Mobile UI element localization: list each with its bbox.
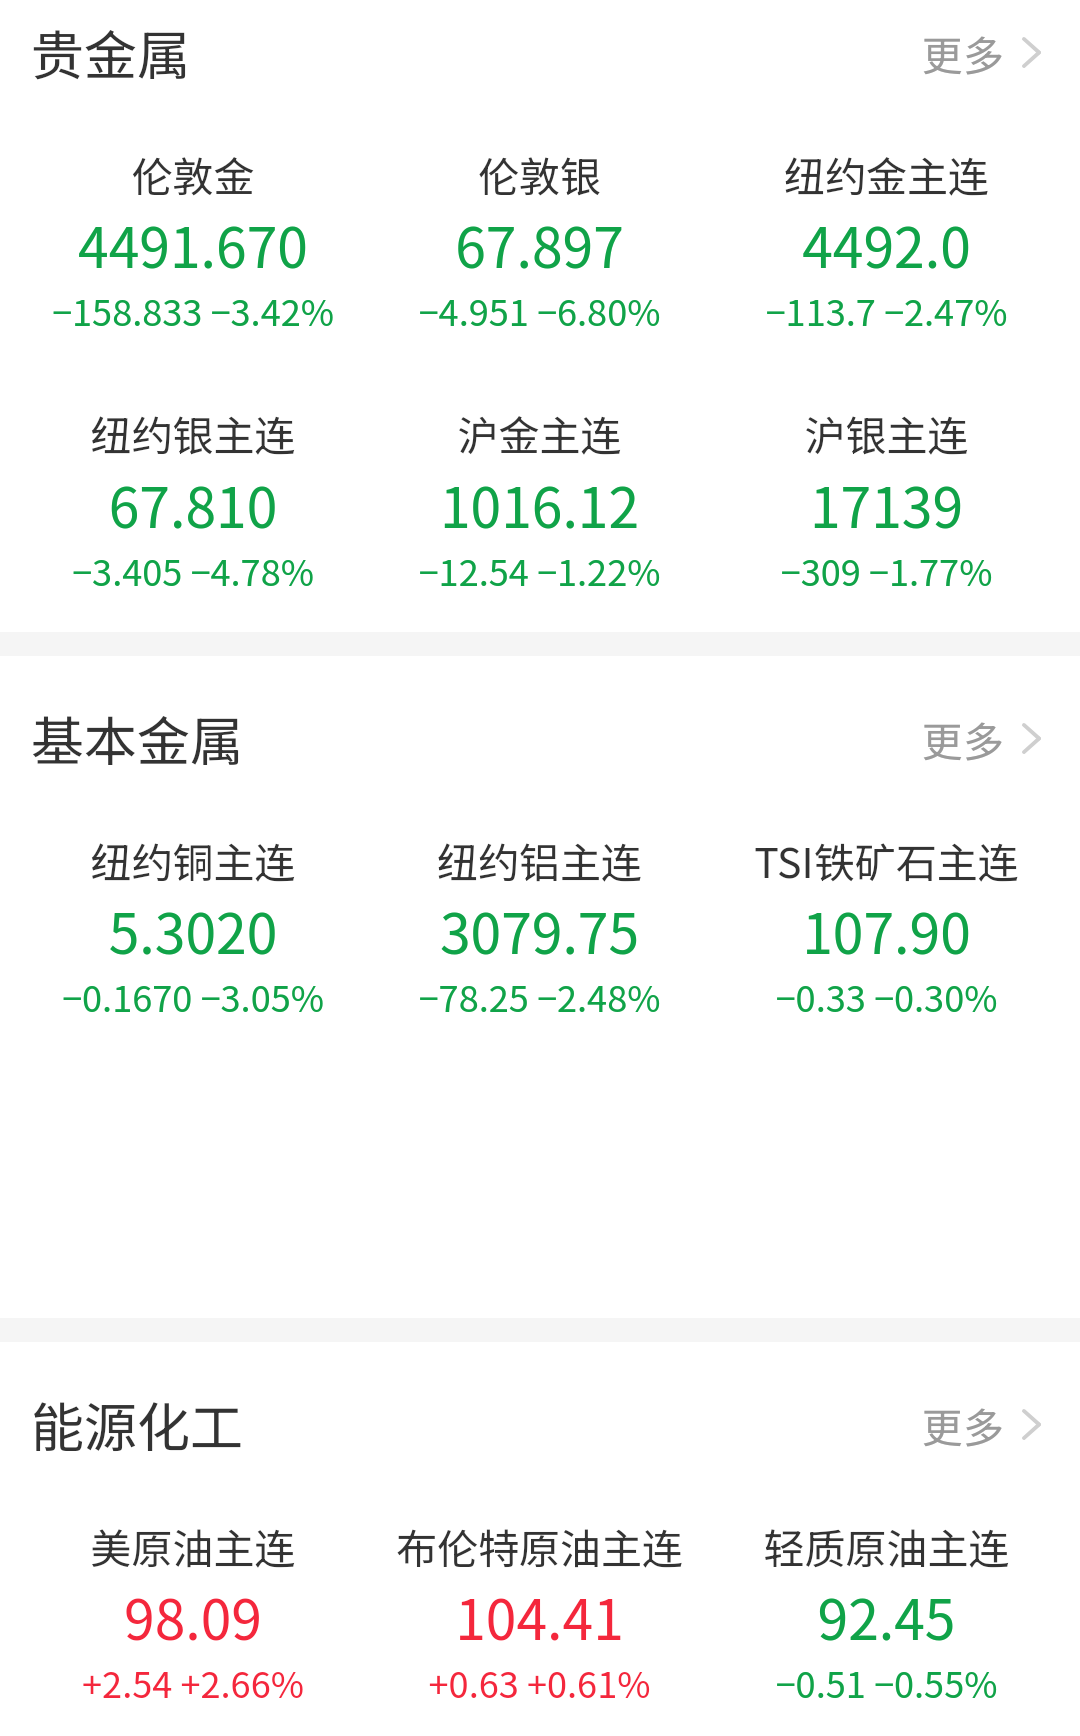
button[interactable] xyxy=(713,122,1060,290)
staticText: −113.7 −2.47% xyxy=(713,284,1060,336)
staticText: 4491.670 xyxy=(20,204,366,284)
staticText: −0.33 −0.30% xyxy=(713,970,1060,1022)
staticText: 92.45 xyxy=(713,1576,1060,1656)
staticText: −12.54 −1.22% xyxy=(366,544,713,596)
staticText: 布伦特原油主连 xyxy=(366,1516,713,1575)
button[interactable] xyxy=(20,122,366,290)
button[interactable]: 更多 xyxy=(922,23,1041,82)
button[interactable]: 更多 xyxy=(922,709,1041,768)
staticText: 17139 xyxy=(713,464,1060,544)
button[interactable] xyxy=(366,808,713,976)
staticText: −78.25 −2.48% xyxy=(366,970,713,1022)
staticText: 67.897 xyxy=(366,204,713,284)
staticText: 更多 xyxy=(922,709,1004,768)
button[interactable] xyxy=(713,808,1060,976)
staticText: 4492.0 xyxy=(713,204,1060,284)
staticText: 贵金属 xyxy=(31,14,190,91)
staticText: 107.90 xyxy=(713,890,1060,970)
button[interactable] xyxy=(20,808,366,976)
staticText: 沪金主连 xyxy=(366,403,713,462)
staticText: 轻质原油主连 xyxy=(713,1516,1060,1575)
staticText: 纽约银主连 xyxy=(20,403,366,462)
staticText: 纽约金主连 xyxy=(713,144,1060,203)
staticText: −0.1670 −3.05% xyxy=(20,970,366,1022)
staticText: 104.41 xyxy=(366,1576,713,1656)
button[interactable] xyxy=(713,1494,1060,1662)
button[interactable]: 更多 xyxy=(922,1395,1041,1454)
staticText: 沪银主连 xyxy=(713,403,1060,462)
staticText: 1016.12 xyxy=(366,464,713,544)
staticText: 美原油主连 xyxy=(20,1516,366,1575)
button[interactable] xyxy=(366,122,713,290)
staticText: 伦敦金 xyxy=(20,144,366,203)
staticText: 能源化工 xyxy=(31,1386,243,1463)
staticText: −4.951 −6.80% xyxy=(366,284,713,336)
button[interactable] xyxy=(366,381,713,549)
staticText: −309 −1.77% xyxy=(713,544,1060,596)
staticText: −3.405 −4.78% xyxy=(20,544,366,596)
other: 更多 xyxy=(1022,723,1041,754)
staticText: 伦敦银 xyxy=(366,144,713,203)
staticText: 更多 xyxy=(922,23,1004,82)
button[interactable] xyxy=(366,1494,713,1662)
staticText: TSI铁矿石主连 xyxy=(713,830,1060,889)
staticText: −158.833 −3.42% xyxy=(20,284,366,336)
staticText: 纽约铝主连 xyxy=(366,830,713,889)
staticText: 纽约铜主连 xyxy=(20,830,366,889)
staticText: 基本金属 xyxy=(31,700,243,777)
staticText: +0.63 +0.61% xyxy=(366,1656,713,1708)
button[interactable] xyxy=(20,381,366,549)
button[interactable] xyxy=(20,1494,366,1662)
staticText: +2.54 +2.66% xyxy=(20,1656,366,1708)
staticText: 更多 xyxy=(922,1395,1004,1454)
staticText: 5.3020 xyxy=(20,890,366,970)
button[interactable]: 基本金属 xyxy=(19,670,231,780)
other: 更多 xyxy=(1022,1409,1041,1440)
staticText: 98.09 xyxy=(20,1576,366,1656)
staticText: 3079.75 xyxy=(366,890,713,970)
button[interactable] xyxy=(713,381,1060,549)
staticText: 67.810 xyxy=(20,464,366,544)
other: 更多 xyxy=(1022,37,1041,68)
staticText: −0.51 −0.55% xyxy=(713,1656,1060,1708)
button[interactable]: 贵金属 xyxy=(19,0,178,94)
button[interactable]: 能源化工 xyxy=(19,1356,231,1466)
